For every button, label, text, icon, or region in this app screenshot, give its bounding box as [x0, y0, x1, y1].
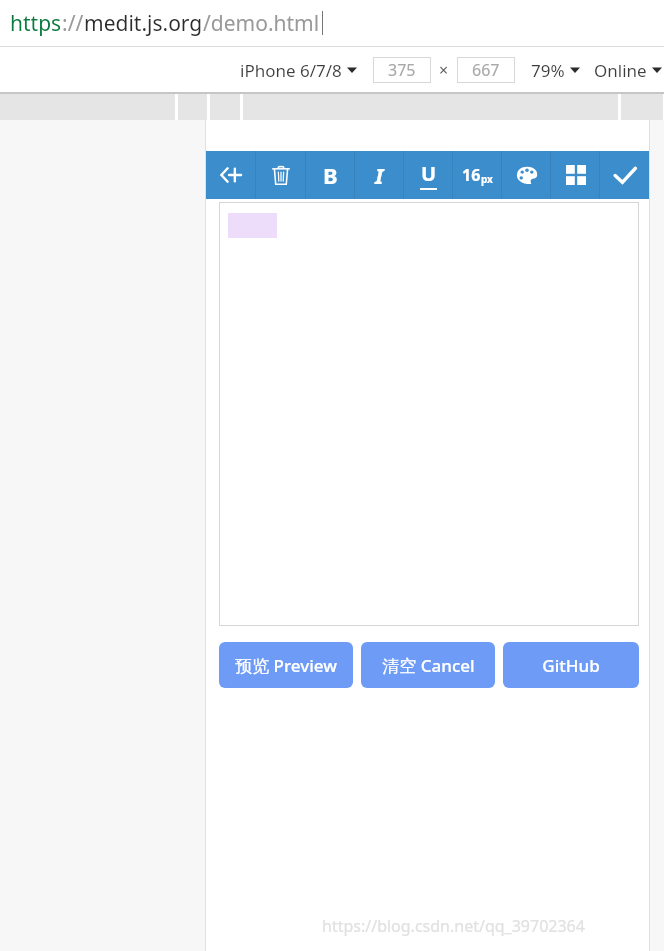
staticText: 16	[462, 164, 481, 186]
staticText: 清空 Cancel	[382, 654, 475, 677]
staticText: medit.js.org	[84, 9, 203, 38]
staticText: Online	[594, 59, 647, 82]
button[interactable]: Underline	[404, 151, 453, 199]
staticText: https	[10, 9, 62, 38]
staticText: ://	[62, 9, 84, 38]
button[interactable]: Bold	[306, 151, 355, 199]
staticText: GitHub	[542, 654, 600, 677]
staticText: 667	[472, 59, 500, 81]
staticText: px	[481, 172, 493, 186]
staticText: /demo.html	[203, 9, 320, 38]
button[interactable]: 清空 Cancel	[361, 642, 495, 688]
staticText: I	[375, 160, 384, 190]
button[interactable]: Text color	[502, 151, 551, 199]
button[interactable]: Undo	[206, 151, 256, 199]
button[interactable]: Italic	[355, 151, 404, 199]
staticText: https://blog.csdn.net/qq_39702364	[322, 915, 585, 937]
button[interactable]: Done	[600, 151, 649, 199]
staticText: ×	[439, 59, 449, 81]
staticText: 375	[388, 59, 416, 81]
staticText: 79%	[531, 59, 565, 82]
staticText: U	[421, 160, 437, 187]
button[interactable]: Font size	[453, 151, 502, 199]
button[interactable]: Delete	[256, 151, 306, 199]
staticText: B	[323, 160, 338, 190]
button[interactable]: 预览 Preview	[219, 642, 353, 688]
staticText: iPhone 6/7/8	[240, 59, 342, 82]
staticText: 预览 Preview	[235, 654, 337, 677]
button[interactable]: Table	[551, 151, 600, 199]
button[interactable]: GitHub	[503, 642, 639, 688]
